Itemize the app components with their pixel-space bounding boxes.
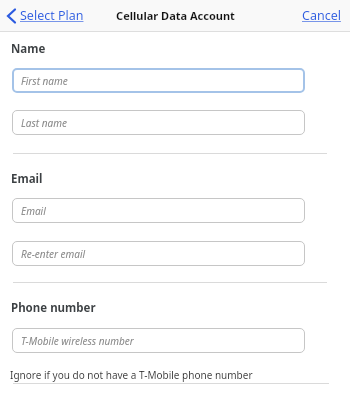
staticText: Ignore if you do not have a T-Mobile pho…	[10, 368, 253, 382]
staticText: Email	[21, 204, 46, 218]
staticText: T-Mobile wireless number	[21, 334, 134, 348]
staticText: Email	[11, 171, 43, 187]
staticText: Name	[11, 41, 46, 57]
button[interactable]: Select Plan	[2, 0, 102, 31]
staticText: Select Plan	[20, 7, 84, 24]
button[interactable]: First name	[12, 68, 305, 93]
button[interactable]: Re-enter email	[12, 241, 305, 266]
button[interactable]: Email	[12, 198, 305, 223]
staticText: Last name	[21, 116, 67, 130]
button[interactable]: Last name	[12, 110, 305, 135]
staticText: Phone number	[11, 300, 96, 316]
staticText: Re-enter email	[21, 247, 86, 261]
staticText: First name	[21, 74, 68, 88]
button[interactable]: Cancel	[302, 7, 341, 24]
button[interactable]: T-Mobile wireless number	[12, 328, 305, 353]
staticText: Cancel	[302, 7, 341, 24]
staticText: Cellular Data Account	[116, 8, 235, 23]
